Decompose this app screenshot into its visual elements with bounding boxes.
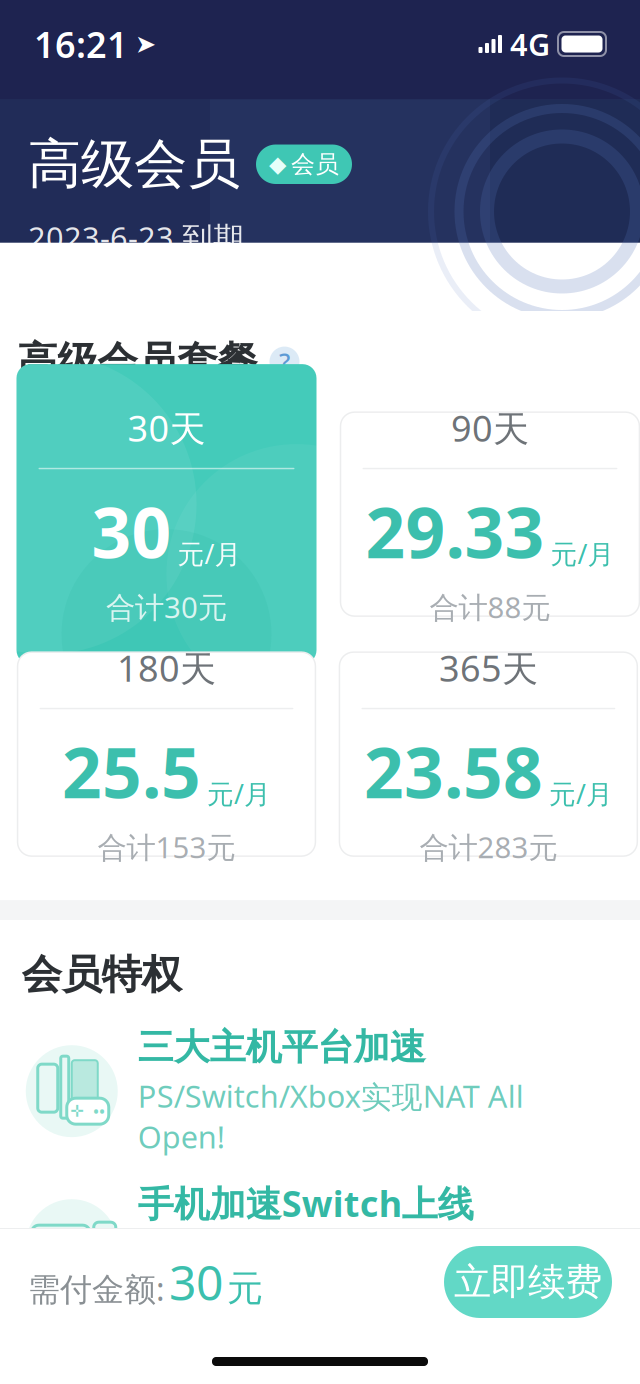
- staticText: 元/月: [550, 536, 614, 571]
- staticText: ✛: [70, 1102, 83, 1120]
- staticText: 元/月: [207, 776, 271, 811]
- staticText: 16:21: [34, 20, 128, 68]
- staticText: 4G: [510, 24, 550, 64]
- staticText: 元/月: [549, 776, 613, 811]
- staticText: 会员中心: [234, 102, 406, 154]
- staticText: 30天: [127, 404, 205, 452]
- staticText: PS/Switch/Xbox实现NAT All Open!: [138, 1075, 524, 1157]
- staticText: 合计88元: [429, 587, 550, 626]
- staticText: 23.58: [364, 725, 543, 817]
- staticText: 高级会员套餐: [17, 337, 257, 386]
- button[interactable]: 365天: [339, 652, 637, 856]
- button[interactable]: 180天: [18, 652, 315, 856]
- staticText: 三大主机平台加速: [138, 1025, 426, 1069]
- staticText: ?: [279, 345, 290, 378]
- staticText: ‹: [36, 87, 52, 169]
- staticText: 30: [169, 1250, 223, 1314]
- button[interactable]: ✛: [0, 1025, 640, 1157]
- staticText: 180天: [117, 644, 216, 692]
- staticText: 30: [91, 485, 171, 577]
- staticText: 25.5: [62, 725, 201, 817]
- staticText: 手机加速Switch上线: [138, 1179, 474, 1227]
- staticText: 会员: [291, 149, 339, 179]
- staticText: ➤: [135, 30, 156, 58]
- staticText: 合计283元: [419, 827, 557, 866]
- button[interactable]: 立即续费: [444, 1246, 612, 1318]
- staticText: 高级会员: [28, 131, 240, 197]
- staticText: 29.33: [365, 485, 544, 577]
- button[interactable]: ✓: [0, 1179, 640, 1311]
- staticText: 90天: [451, 404, 529, 452]
- button[interactable]: 30天: [16, 412, 316, 616]
- staticText: 会员特权: [22, 950, 182, 999]
- staticText: 元/月: [177, 536, 241, 571]
- staticText: 无需硬件，手机即可加速Switch下载联机！: [138, 1233, 604, 1311]
- staticText: 合计30元: [106, 587, 227, 626]
- staticText: 需付金额:: [28, 1267, 165, 1310]
- staticText: 元: [227, 1266, 263, 1311]
- button[interactable]: 套餐说明: [269, 347, 299, 377]
- staticText: 合计153元: [97, 827, 235, 866]
- staticText: ◆: [269, 151, 286, 177]
- button[interactable]: 返回: [8, 92, 80, 164]
- staticText: 2023-6-23 到期: [28, 217, 244, 258]
- button[interactable]: 90天: [340, 412, 639, 616]
- staticText: 365天: [439, 644, 538, 692]
- staticText: 立即续费: [454, 1259, 602, 1305]
- staticText: ••: [93, 1101, 105, 1121]
